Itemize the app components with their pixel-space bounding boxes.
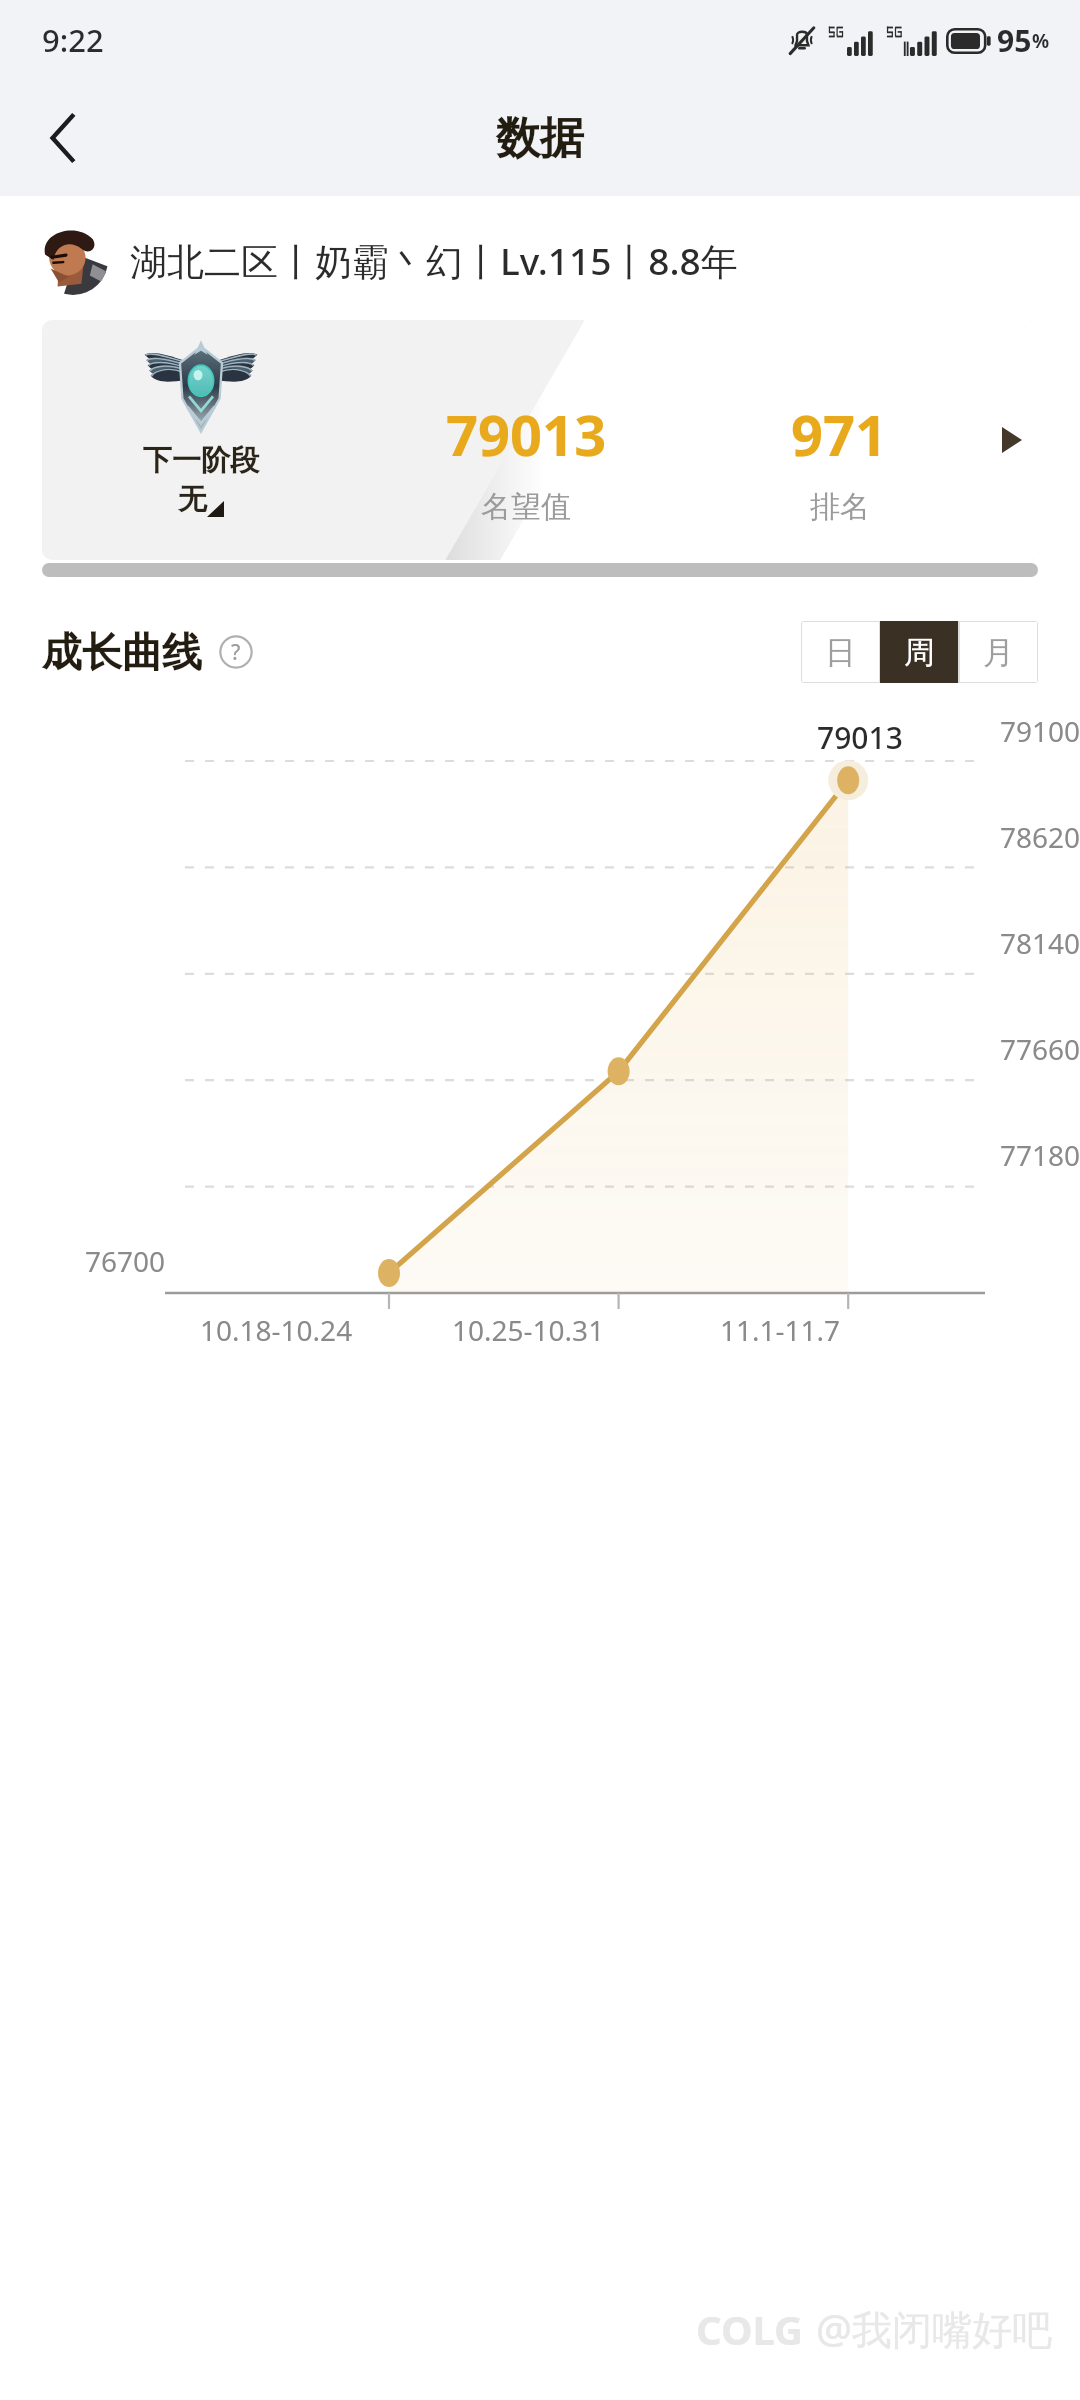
staticText: 79013	[817, 717, 903, 758]
staticText: 湖北二区丨奶霸丶幻丨Lv.115丨8.8年	[130, 235, 738, 286]
staticText: 76700	[0, 1242, 165, 1280]
button[interactable]: 周	[880, 621, 959, 683]
staticText: 10.25-10.31	[452, 1311, 605, 1349]
staticText: 成长曲线	[42, 627, 202, 677]
staticText: 95	[997, 20, 1032, 61]
staticText: 9:22	[42, 19, 104, 61]
staticText: 无	[178, 481, 207, 518]
button[interactable]: 日	[801, 621, 880, 683]
staticText: 11.1-11.7	[720, 1311, 841, 1349]
staticText: 77180	[915, 1136, 1080, 1174]
staticText: %	[1032, 28, 1050, 54]
staticText: 79100	[915, 712, 1080, 750]
staticText: 月	[983, 633, 1014, 672]
staticText: @我闭嘴好吧	[816, 2301, 1052, 2356]
staticText: COLG	[696, 2302, 804, 2356]
staticText: 日	[825, 633, 856, 672]
button[interactable]: Back	[26, 100, 102, 176]
staticText: 971	[791, 396, 888, 472]
staticText: ?	[231, 638, 241, 667]
button[interactable]: 下一阶段	[42, 320, 1038, 560]
staticText: 10.18-10.24	[200, 1311, 353, 1349]
staticText: 名望值	[481, 488, 571, 526]
staticText: 周	[904, 633, 935, 672]
staticText: 78140	[915, 924, 1080, 962]
staticText: 数据	[496, 111, 584, 166]
staticText: 77660	[915, 1030, 1080, 1068]
button[interactable]: 月	[959, 621, 1038, 683]
staticText: 78620	[915, 818, 1080, 856]
staticText: 下一阶段	[143, 442, 259, 479]
button[interactable]: 湖北二区丨奶霸丶幻丨Lv.115丨8.8年	[0, 218, 1080, 302]
button[interactable]: Help	[216, 632, 256, 672]
staticText: 79013	[446, 396, 607, 472]
staticText: 排名	[810, 488, 870, 526]
